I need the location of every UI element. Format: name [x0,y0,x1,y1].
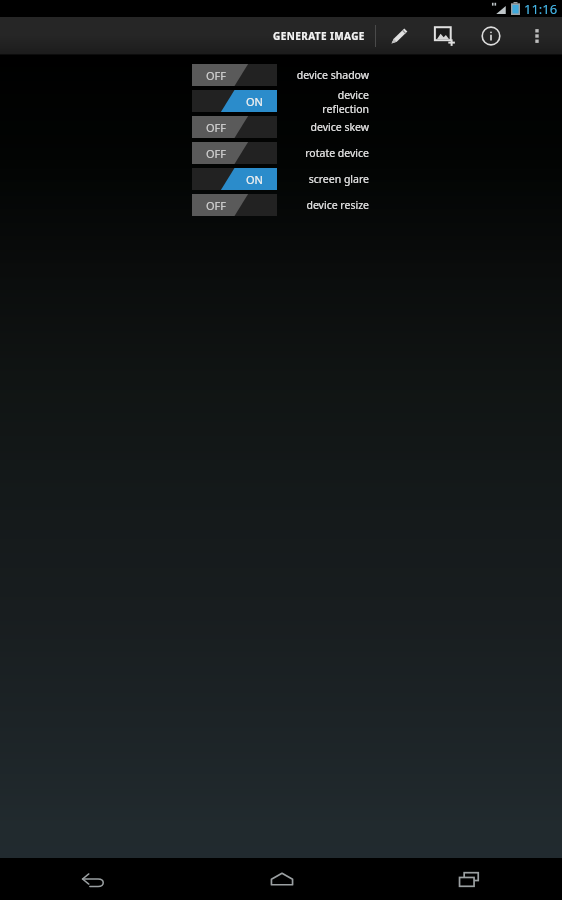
staticText: OFF [206,146,227,161]
button[interactable]: Add image [422,17,468,54]
staticText: ON [246,94,263,109]
button[interactable]: On [192,90,277,112]
staticText: device resize [306,198,369,212]
button[interactable]: GENERATE IMAGE [263,17,375,54]
button[interactable]: More options [514,17,560,54]
button[interactable]: Off [192,64,277,86]
button[interactable]: Off [192,194,277,216]
staticText: ON [246,172,263,187]
staticText: screen glare [308,172,369,186]
button[interactable]: On [192,168,277,190]
staticText: rotate device [305,146,369,160]
staticText: device reflection [291,88,369,114]
staticText: OFF [206,68,227,83]
staticText: device shadow [296,68,369,82]
staticText: OFF [206,198,227,213]
staticText: device skew [310,120,369,134]
staticText: OFF [206,120,227,135]
button[interactable]: Off [192,142,277,164]
button[interactable]: Info [468,17,514,54]
button[interactable]: Edit [376,17,422,54]
button[interactable]: Home [188,858,375,900]
button[interactable]: Back [0,858,188,900]
button[interactable]: Recents [375,858,562,900]
button[interactable]: Off [192,116,277,138]
staticText: 11:16 [524,0,558,17]
staticText: GENERATE IMAGE [273,29,365,43]
